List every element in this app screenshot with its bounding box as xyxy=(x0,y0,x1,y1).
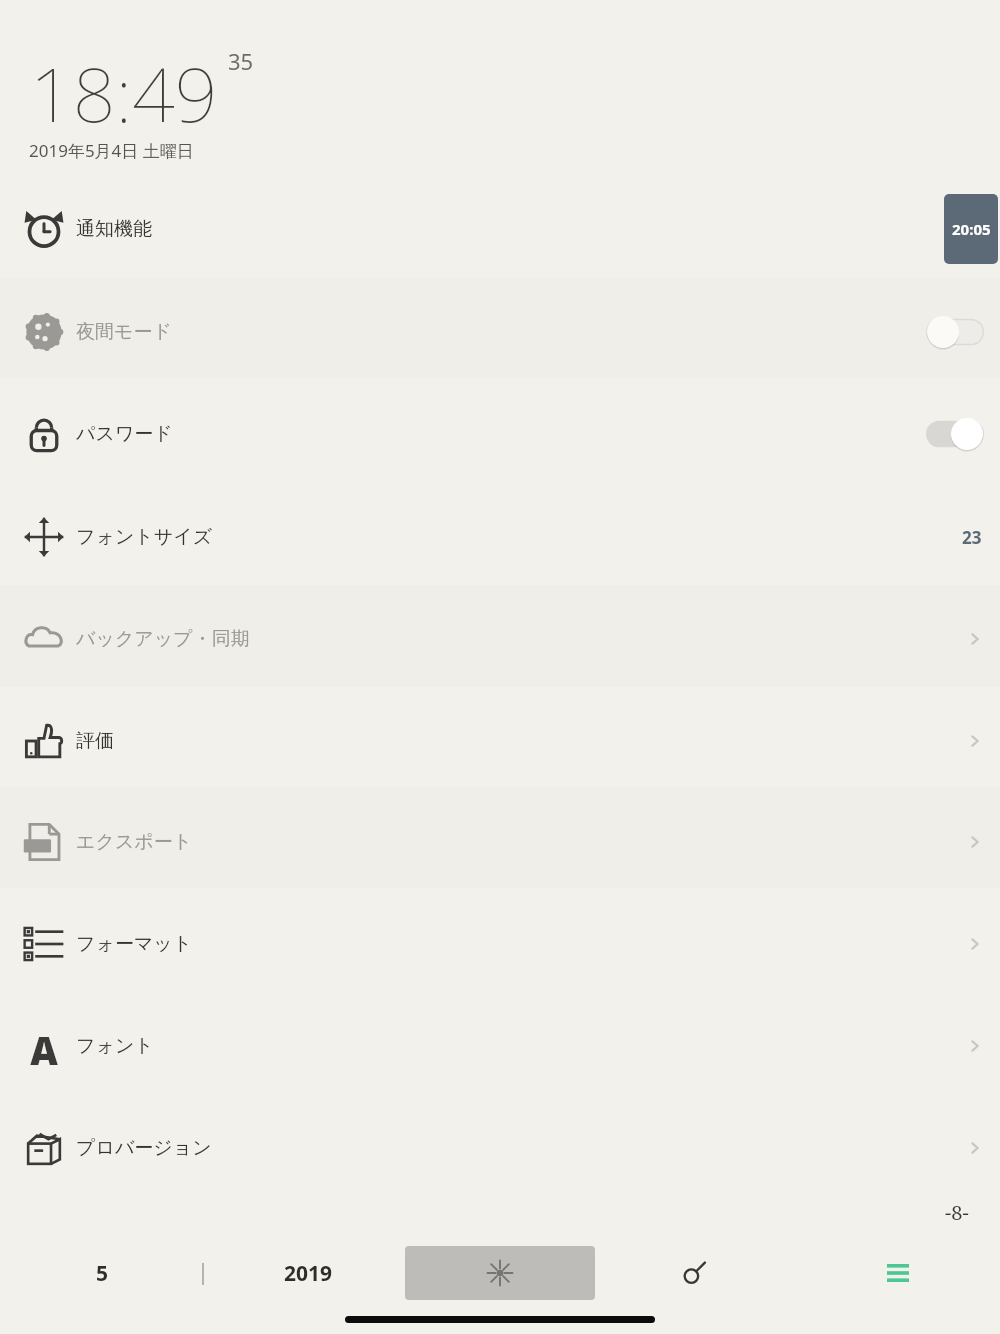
button[interactable]: パスワード xyxy=(0,385,1000,483)
staticText: エクスポート xyxy=(76,830,193,854)
staticText: プロバージョン xyxy=(76,1136,212,1160)
button[interactable]: 20:05 xyxy=(944,194,998,264)
staticText: フォント xyxy=(76,1034,154,1058)
button[interactable]: Off xyxy=(926,315,984,349)
staticText: 18:49 xyxy=(30,42,218,144)
staticText: フォーマット xyxy=(76,932,193,956)
staticText: バックアップ・同期 xyxy=(76,627,250,651)
staticText: フォントサイズ xyxy=(76,525,213,549)
staticText: 35 xyxy=(228,46,254,76)
button[interactable]: エクスポート xyxy=(0,793,1000,891)
staticText: 2019 xyxy=(284,1259,333,1288)
staticText: A xyxy=(30,1024,58,1068)
button[interactable]: フォーマット xyxy=(0,895,1000,993)
button[interactable]: 通知機能 xyxy=(0,180,1000,278)
button[interactable]: Menu xyxy=(868,1244,928,1302)
staticText: 夜間モード xyxy=(76,320,172,344)
button[interactable]: プロバージョン xyxy=(0,1099,1000,1197)
staticText: 5 xyxy=(96,1259,109,1288)
staticText: 評価 xyxy=(76,729,114,753)
staticText: -8- xyxy=(945,1199,969,1226)
button[interactable]: 2019 xyxy=(268,1244,348,1302)
button[interactable]: Gender xyxy=(664,1244,724,1302)
button[interactable]: On xyxy=(926,417,984,451)
button[interactable]: バックアップ・同期 xyxy=(0,590,1000,688)
button[interactable]: フォントサイズ xyxy=(0,488,1000,586)
staticText: 23 xyxy=(962,526,982,549)
button[interactable]: Today xyxy=(405,1246,595,1300)
button[interactable]: 評価 xyxy=(0,692,1000,790)
staticText: 20:05 xyxy=(952,219,991,239)
button[interactable]: 5 xyxy=(70,1244,134,1302)
staticText: 2019年5月4日 土曜日 xyxy=(29,139,194,162)
staticText: パスワード xyxy=(76,422,173,446)
button[interactable]: A xyxy=(0,997,1000,1095)
staticText: 通知機能 xyxy=(76,217,152,241)
button[interactable]: 夜間モード xyxy=(0,283,1000,381)
